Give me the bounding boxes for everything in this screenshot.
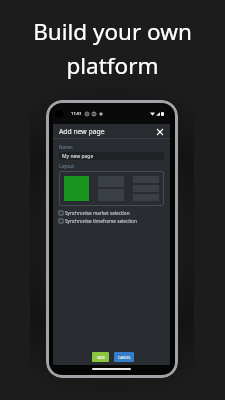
button[interactable]: Layout two panes <box>98 176 124 201</box>
staticText: platform <box>66 50 159 81</box>
button[interactable]: SAVE <box>92 352 109 362</box>
staticText: My new page <box>62 153 94 160</box>
staticText: Build your own <box>33 16 192 47</box>
button[interactable]: Synchronise timeframe selection <box>59 218 164 224</box>
staticText: Add new page <box>59 127 105 136</box>
button[interactable]: CANCEL <box>114 352 134 362</box>
button[interactable]: My new page <box>59 152 164 160</box>
staticText: 11:51 <box>71 111 82 117</box>
button[interactable]: Synchronise market selection <box>59 210 164 216</box>
staticText: Synchronise market selection <box>65 210 130 216</box>
button[interactable]: Layout three panes <box>133 176 159 201</box>
button[interactable]: Close <box>154 126 165 137</box>
staticText: SAVE <box>97 355 105 360</box>
staticText: Name: <box>59 144 74 150</box>
staticText: CANCEL <box>118 355 131 360</box>
staticText: Synchronise timeframe selection <box>65 218 137 224</box>
staticText: Layout: <box>59 163 75 169</box>
